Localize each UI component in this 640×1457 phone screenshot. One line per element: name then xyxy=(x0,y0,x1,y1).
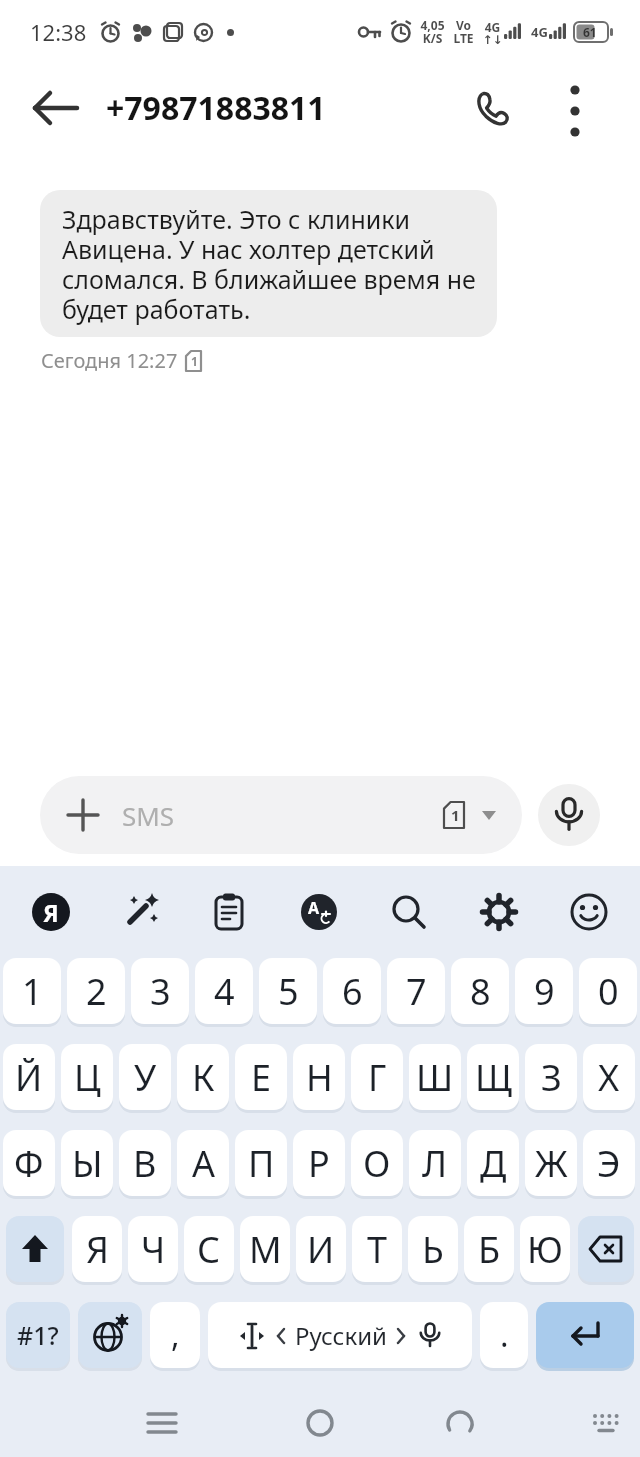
staticText: Vo LTE xyxy=(453,17,474,47)
button[interactable]: У xyxy=(119,1044,171,1110)
button[interactable] xyxy=(30,82,82,134)
button[interactable]: Г xyxy=(351,1044,403,1110)
staticText: А xyxy=(192,1139,215,1188)
button[interactable] xyxy=(78,1302,142,1368)
button[interactable] xyxy=(466,82,518,134)
staticText: Русский xyxy=(295,1319,387,1352)
button[interactable]: П xyxy=(235,1130,287,1196)
button[interactable]: С xyxy=(184,1216,234,1282)
button[interactable]: 9 xyxy=(515,958,573,1024)
button[interactable]: Ц xyxy=(61,1044,113,1110)
staticText: +79871883811 xyxy=(106,86,326,130)
staticText: Л xyxy=(422,1139,448,1188)
button[interactable]: #1? xyxy=(6,1302,70,1368)
staticText: Д xyxy=(480,1139,507,1188)
staticText: 1 xyxy=(191,353,198,369)
staticText: 6 xyxy=(342,967,363,1016)
button[interactable] xyxy=(6,1216,64,1282)
button[interactable]: Ы xyxy=(61,1130,113,1196)
button[interactable]: К xyxy=(177,1044,229,1110)
button[interactable]: Д xyxy=(467,1130,519,1196)
button[interactable]: Я xyxy=(6,866,95,958)
button[interactable]: М xyxy=(240,1216,290,1282)
staticText: 12:38 xyxy=(30,17,87,47)
staticText: Т xyxy=(367,1225,388,1274)
button[interactable]: . xyxy=(480,1302,528,1368)
button[interactable]: 4 xyxy=(195,958,253,1024)
button[interactable]: Й xyxy=(3,1044,55,1110)
staticText: 3 xyxy=(150,967,171,1016)
button[interactable]: О xyxy=(351,1130,403,1196)
button[interactable] xyxy=(582,1399,630,1447)
staticText: #1? xyxy=(17,1318,59,1352)
staticText: 2 xyxy=(86,967,107,1016)
button[interactable]: 3 xyxy=(131,958,189,1024)
button[interactable]: Н xyxy=(293,1044,345,1110)
button[interactable] xyxy=(538,784,600,846)
button[interactable] xyxy=(552,85,598,131)
staticText: Ь xyxy=(422,1225,444,1274)
button[interactable]: Ь xyxy=(408,1216,458,1282)
staticText: Й xyxy=(15,1053,43,1102)
button[interactable] xyxy=(184,866,274,958)
button[interactable] xyxy=(436,1399,484,1447)
staticText: A xyxy=(308,897,320,919)
staticText: 0 xyxy=(598,967,619,1016)
button[interactable]: , xyxy=(150,1302,200,1368)
button[interactable]: Т xyxy=(352,1216,402,1282)
button[interactable]: В xyxy=(119,1130,171,1196)
button[interactable]: Е xyxy=(235,1044,287,1110)
button[interactable]: 2 xyxy=(67,958,125,1024)
button[interactable]: Л xyxy=(409,1130,461,1196)
button[interactable]: Я xyxy=(72,1216,122,1282)
staticText: Ш xyxy=(416,1053,454,1102)
button[interactable]: Щ xyxy=(467,1044,519,1110)
button[interactable]: Ш xyxy=(409,1044,461,1110)
button[interactable]: 8 xyxy=(451,958,509,1024)
button[interactable] xyxy=(536,1302,634,1368)
staticText: Сегодня 12:27 xyxy=(41,347,178,374)
staticText: 1 xyxy=(451,805,460,825)
button[interactable] xyxy=(138,1399,186,1447)
staticText: Я xyxy=(86,1225,109,1274)
button[interactable]: A xyxy=(274,866,364,958)
staticText: Х xyxy=(598,1053,620,1102)
button[interactable]: SMS xyxy=(40,776,522,854)
button[interactable]: 5 xyxy=(259,958,317,1024)
button[interactable]: Ч xyxy=(128,1216,178,1282)
button[interactable] xyxy=(544,866,634,958)
button[interactable]: З xyxy=(525,1044,577,1110)
staticText: Ю xyxy=(527,1225,563,1274)
staticText: К xyxy=(192,1053,215,1102)
button[interactable]: 6 xyxy=(323,958,381,1024)
button[interactable] xyxy=(95,866,184,958)
staticText: 61 xyxy=(583,24,597,40)
button[interactable]: Ю xyxy=(520,1216,570,1282)
button[interactable]: Б xyxy=(464,1216,514,1282)
button[interactable]: Ф xyxy=(3,1130,55,1196)
button[interactable]: Здравствуйте. Это с клиники Авицена. У н… xyxy=(40,190,497,337)
button[interactable]: Русский xyxy=(208,1302,472,1368)
staticText: Я xyxy=(43,897,59,928)
staticText: 8 xyxy=(470,967,491,1016)
staticText: Е xyxy=(251,1053,272,1102)
staticText: 9 xyxy=(534,967,555,1016)
button[interactable]: Х xyxy=(583,1044,635,1110)
button[interactable]: Ж xyxy=(525,1130,577,1196)
staticText: 4 xyxy=(214,967,235,1016)
button[interactable]: 7 xyxy=(387,958,445,1024)
button[interactable]: 0 xyxy=(579,958,637,1024)
button[interactable]: Э xyxy=(583,1130,635,1196)
button[interactable] xyxy=(364,866,454,958)
staticText: 5 xyxy=(278,967,299,1016)
staticText: 7 xyxy=(406,967,427,1016)
button[interactable]: Р xyxy=(293,1130,345,1196)
staticText: Б xyxy=(478,1225,501,1274)
staticText: , xyxy=(171,1313,180,1357)
button[interactable]: А xyxy=(177,1130,229,1196)
button[interactable] xyxy=(454,866,544,958)
button[interactable] xyxy=(578,1216,634,1282)
button[interactable]: И xyxy=(296,1216,346,1282)
button[interactable] xyxy=(296,1399,344,1447)
button[interactable]: 1 xyxy=(3,958,61,1024)
